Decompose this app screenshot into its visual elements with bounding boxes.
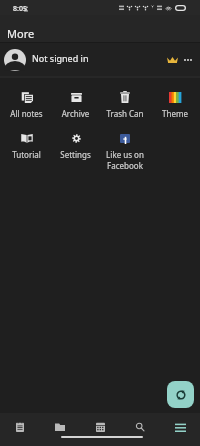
staticText: Settings: [51, 149, 100, 160]
staticText: Theme: [150, 108, 200, 119]
button[interactable]: Settings: [51, 132, 100, 160]
staticText: Tutorial: [2, 149, 51, 160]
button[interactable]: Notes: [0, 413, 40, 439]
button[interactable]: Like us on Facebook: [100, 132, 150, 171]
button[interactable]: Premium: [164, 47, 180, 73]
staticText: Not signed in: [32, 52, 89, 64]
staticText: All notes: [2, 108, 51, 119]
button[interactable]: Theme: [150, 91, 200, 119]
button[interactable]: More options: [180, 47, 196, 73]
staticText: Archive: [51, 108, 100, 119]
button[interactable]: Archive: [51, 91, 100, 119]
button[interactable]: Folders: [40, 413, 80, 439]
button[interactable]: Menu: [160, 413, 200, 439]
staticText: Trash Can: [100, 108, 150, 119]
staticText: Like us on Facebook: [100, 149, 150, 171]
button[interactable]: Tutorial: [2, 132, 51, 160]
button[interactable]: Trash Can: [100, 91, 150, 119]
button[interactable]: Sync: [167, 381, 194, 408]
staticText: More: [7, 26, 35, 41]
staticText: 8:05: [13, 4, 27, 14]
button[interactable]: All notes: [2, 91, 51, 119]
button[interactable]: Calendar: [80, 413, 120, 439]
button[interactable]: Not signed in: [0, 43, 200, 76]
button[interactable]: Search: [120, 413, 160, 439]
